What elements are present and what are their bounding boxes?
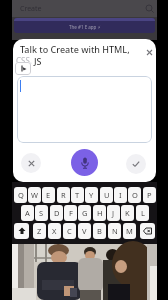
staticText: Z [37, 226, 42, 236]
button[interactable]: U [100, 187, 113, 203]
staticText: K [125, 208, 130, 218]
staticText: D [54, 208, 60, 218]
staticText: L [141, 208, 145, 218]
button[interactable]: A [21, 205, 34, 221]
staticText: R [61, 190, 66, 200]
staticText: I [119, 190, 122, 200]
staticText: M [126, 226, 133, 236]
staticText: U [104, 190, 110, 200]
button[interactable] [14, 223, 29, 239]
button[interactable] [17, 76, 152, 143]
staticText: N [112, 226, 118, 236]
staticText: H [97, 208, 103, 218]
button[interactable] [21, 153, 41, 173]
staticText: C [67, 226, 72, 236]
button[interactable]: W [28, 187, 41, 203]
button[interactable]: F [64, 205, 77, 221]
button[interactable]: C [63, 223, 76, 239]
button[interactable]: O [128, 187, 141, 203]
button[interactable]: K [121, 205, 134, 221]
button[interactable]: Z [33, 223, 46, 239]
staticText: G [82, 208, 88, 218]
button[interactable] [71, 149, 98, 176]
staticText: S [39, 208, 44, 218]
button[interactable]: I [114, 187, 127, 203]
button[interactable]: H [93, 205, 106, 221]
button[interactable]: B [93, 223, 106, 239]
staticText: E [46, 190, 51, 200]
staticText: B [97, 226, 102, 236]
button[interactable]: E [42, 187, 55, 203]
staticText: W [31, 190, 38, 200]
staticText: Create [20, 4, 42, 14]
staticText: T [75, 190, 80, 200]
button[interactable]: N [108, 223, 121, 239]
staticText: Y [89, 190, 94, 200]
button[interactable] [146, 49, 153, 56]
button[interactable]: S [35, 205, 48, 221]
staticText: O [132, 190, 138, 200]
staticText: Q [18, 190, 24, 200]
button[interactable]: Y [85, 187, 98, 203]
staticText: J [112, 208, 115, 218]
button[interactable]: G [78, 205, 91, 221]
button[interactable] [145, 4, 155, 14]
button[interactable]: X [48, 223, 61, 239]
staticText: CSS, [16, 55, 32, 66]
button[interactable] [140, 223, 155, 239]
staticText: JS [34, 55, 42, 67]
button[interactable]: R [57, 187, 70, 203]
button[interactable]: Q [14, 187, 27, 203]
staticText: F [69, 208, 73, 218]
staticText: A [25, 208, 30, 218]
button[interactable]: J [107, 205, 120, 221]
staticText: P [147, 190, 152, 200]
button[interactable]: D [50, 205, 63, 221]
staticText: Talk to Create with HTML, [20, 43, 130, 55]
button[interactable]: L [136, 205, 149, 221]
staticText: X [52, 226, 57, 236]
button[interactable]: The #1 E app ⚡ [14, 18, 155, 33]
staticText: The #1 E app ⚡ [69, 24, 101, 30]
button[interactable]: V [78, 223, 91, 239]
button[interactable] [126, 154, 146, 174]
staticText: V [82, 226, 87, 236]
button[interactable]: T [71, 187, 84, 203]
button[interactable]: P [143, 187, 156, 203]
button[interactable]: M [123, 223, 136, 239]
